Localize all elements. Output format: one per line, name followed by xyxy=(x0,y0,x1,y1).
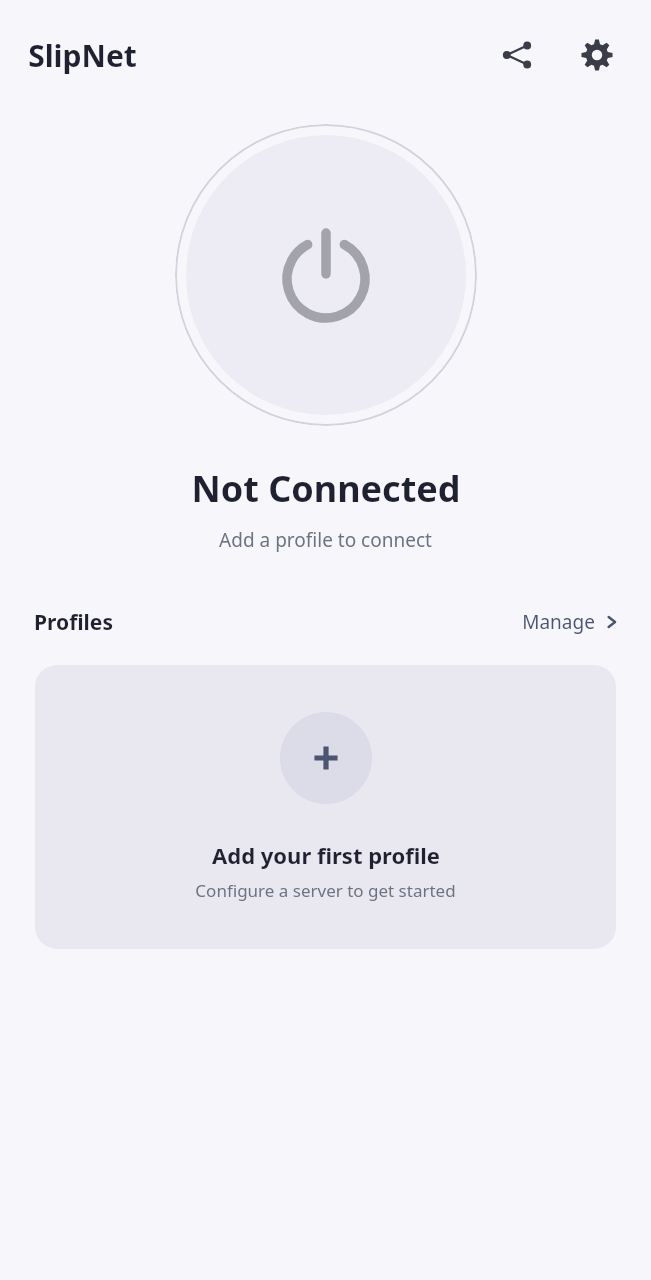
staticText: SlipNet xyxy=(28,35,137,76)
staticText: Add your first profile xyxy=(212,840,440,870)
button[interactable]: Manage xyxy=(518,603,623,641)
button[interactable]: Connect xyxy=(175,124,477,426)
button[interactable]: Settings xyxy=(569,27,625,83)
staticText: Not Connected xyxy=(191,464,461,513)
staticText: Manage xyxy=(522,609,595,635)
staticText: Add a profile to connect xyxy=(219,527,432,553)
button[interactable]: Add your first profile xyxy=(35,665,616,949)
staticText: Configure a server to get started xyxy=(195,879,456,902)
button[interactable]: Share xyxy=(489,27,545,83)
staticText: Profiles xyxy=(34,608,113,637)
